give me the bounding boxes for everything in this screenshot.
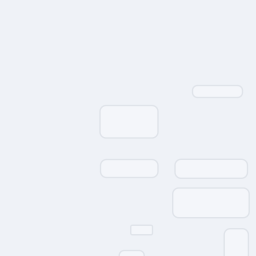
button[interactable]: Sent message <box>192 85 242 97</box>
button[interactable]: Received message <box>100 159 158 177</box>
button[interactable]: Received message <box>119 250 144 256</box>
button[interactable]: Timestamp <box>131 225 153 235</box>
button[interactable]: Sent message <box>224 229 248 256</box>
button[interactable]: Sent message <box>175 159 247 178</box>
button[interactable]: Received message <box>100 105 158 138</box>
button[interactable]: Sent message <box>173 188 249 218</box>
